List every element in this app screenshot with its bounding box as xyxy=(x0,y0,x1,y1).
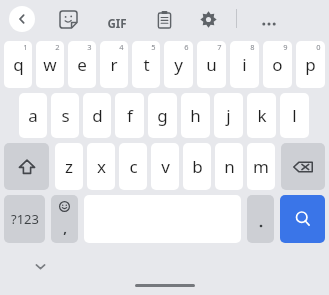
staticText: ?123 xyxy=(11,210,39,228)
button[interactable]: Emoji and comma xyxy=(51,195,78,243)
button[interactable] xyxy=(247,195,274,243)
staticText: 1 xyxy=(23,42,28,52)
staticText: GIF xyxy=(107,16,127,32)
staticText: h xyxy=(190,104,201,127)
staticText: i xyxy=(242,53,247,76)
staticText: p xyxy=(305,53,316,76)
staticText: n xyxy=(224,155,235,178)
staticText: 4 xyxy=(119,42,124,52)
button[interactable]: w xyxy=(36,41,64,88)
button[interactable]: Hide keyboard xyxy=(27,253,53,279)
staticText: w xyxy=(43,53,57,76)
staticText: 8 xyxy=(250,42,255,52)
staticText: 2 xyxy=(55,42,60,52)
button[interactable]: p xyxy=(296,41,325,88)
button[interactable]: Shift xyxy=(4,143,49,190)
staticText: d xyxy=(92,104,103,127)
button[interactable]: i xyxy=(230,41,259,88)
staticText: a xyxy=(28,104,38,127)
button[interactable]: q xyxy=(4,41,32,88)
staticText: g xyxy=(157,104,168,127)
button[interactable]: c xyxy=(119,143,147,190)
staticText: , xyxy=(63,219,67,237)
staticText: e xyxy=(77,53,87,76)
staticText: 3 xyxy=(87,42,92,52)
staticText: 5 xyxy=(151,42,156,52)
button[interactable]: Settings xyxy=(196,7,220,31)
button[interactable]: Clipboard xyxy=(152,7,176,31)
button[interactable]: d xyxy=(83,93,111,138)
staticText: t xyxy=(143,53,150,76)
button[interactable]: More options xyxy=(252,7,286,41)
button[interactable]: h xyxy=(181,93,210,138)
button[interactable]: n xyxy=(215,143,243,190)
staticText: 0 xyxy=(316,42,321,52)
staticText: y xyxy=(174,53,183,76)
button[interactable]: r xyxy=(100,41,128,88)
button[interactable]: k xyxy=(247,93,276,138)
button[interactable]: v xyxy=(151,143,179,190)
staticText: 7 xyxy=(217,42,222,52)
staticText: u xyxy=(206,53,217,76)
staticText: f xyxy=(127,104,133,127)
button[interactable]: x xyxy=(87,143,115,190)
staticText: b xyxy=(192,155,203,178)
staticText: q xyxy=(13,53,24,76)
button[interactable]: s xyxy=(51,93,79,138)
staticText: j xyxy=(226,104,231,127)
button[interactable]: b xyxy=(183,143,211,190)
button[interactable]: z xyxy=(55,143,83,190)
button[interactable]: o xyxy=(263,41,292,88)
button[interactable]: g xyxy=(148,93,177,138)
button[interactable]: ?123 xyxy=(4,195,45,243)
button[interactable]: GIF xyxy=(100,7,134,41)
staticText: c xyxy=(129,155,138,178)
button[interactable]: e xyxy=(68,41,96,88)
staticText: 6 xyxy=(184,42,189,52)
button[interactable]: Stickers xyxy=(56,7,80,31)
button[interactable]: u xyxy=(197,41,226,88)
button[interactable]: a xyxy=(19,93,47,138)
button[interactable]: f xyxy=(115,93,144,138)
staticText: l xyxy=(292,104,297,127)
staticText: z xyxy=(65,155,73,178)
staticText: s xyxy=(61,104,70,127)
button[interactable]: j xyxy=(214,93,243,138)
button[interactable]: m xyxy=(247,143,275,190)
button[interactable]: Backspace xyxy=(281,143,325,190)
button[interactable]: t xyxy=(132,41,160,88)
staticText: k xyxy=(257,104,267,127)
staticText: x xyxy=(97,155,106,178)
staticText: o xyxy=(272,53,283,76)
button[interactable]: Back xyxy=(9,6,35,32)
staticText: 9 xyxy=(283,42,288,52)
staticText: m xyxy=(253,155,269,178)
button[interactable]: Search xyxy=(280,195,325,243)
staticText: r xyxy=(110,53,118,76)
button[interactable]: y xyxy=(164,41,193,88)
staticText: v xyxy=(161,155,170,178)
button[interactable]: l xyxy=(280,93,309,138)
